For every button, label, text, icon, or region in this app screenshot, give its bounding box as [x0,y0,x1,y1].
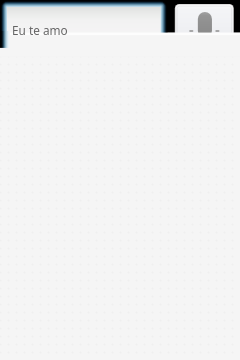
staticText: Eu te amo [12,22,68,38]
